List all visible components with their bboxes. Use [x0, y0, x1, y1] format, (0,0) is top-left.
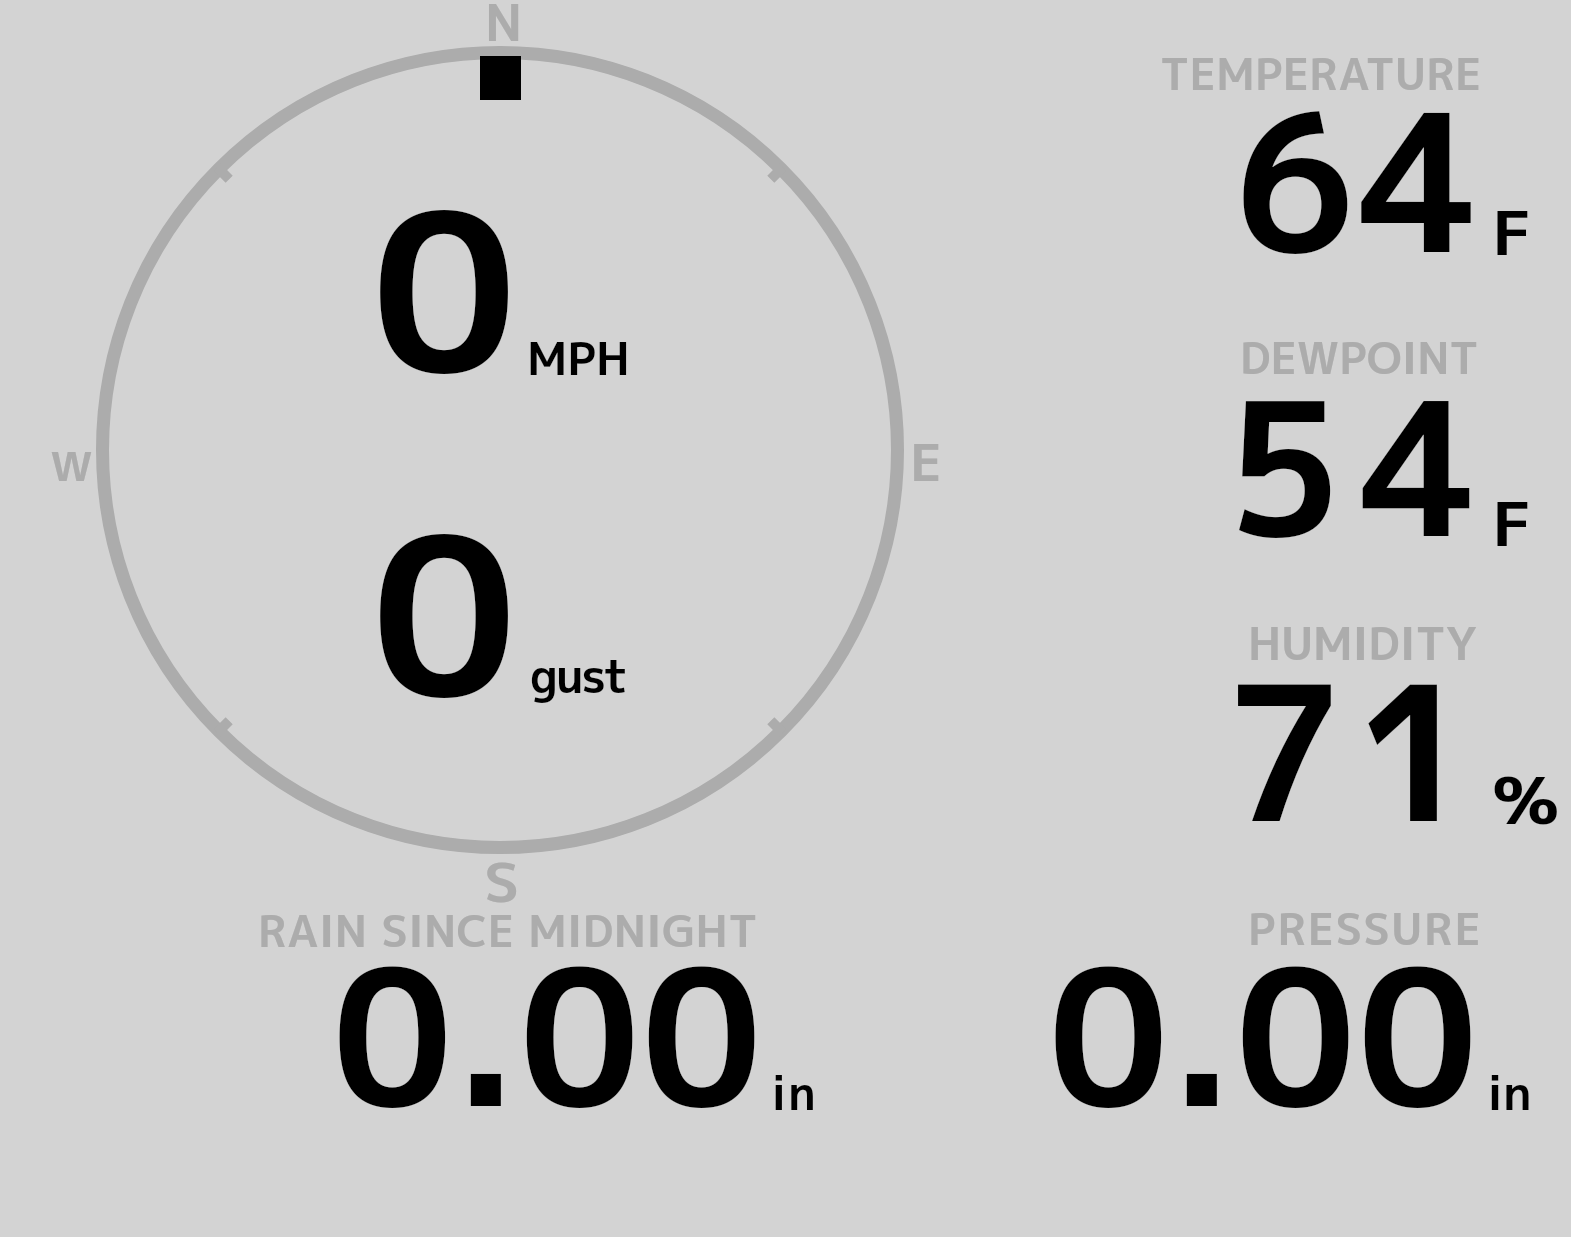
- staticText: gust: [530, 643, 627, 708]
- staticText: N: [485, 0, 523, 57]
- staticText: F: [1492, 481, 1532, 565]
- staticText: S: [484, 846, 520, 918]
- button[interactable]: Dewpoint 54 F: [1110, 310, 1565, 570]
- staticText: 0.00: [332, 903, 764, 1166]
- staticText: TEMPERATURE: [1160, 43, 1482, 104]
- button[interactable]: Rain since midnight 0.00 in: [210, 885, 830, 1135]
- staticText: DEWPOINT: [1240, 327, 1479, 388]
- staticText: 71: [1224, 620, 1488, 881]
- staticText: MPH: [527, 326, 630, 390]
- button[interactable]: Temperature 64 F: [1110, 30, 1565, 300]
- button[interactable]: Pressure 0.00 in: [1000, 885, 1565, 1135]
- staticText: F: [1492, 190, 1532, 274]
- staticText: 0.00: [1048, 903, 1480, 1166]
- staticText: PRESSURE: [1248, 898, 1483, 959]
- staticText: RAIN SINCE MIDNIGHT: [258, 900, 758, 961]
- staticText: HUMIDITY: [1248, 612, 1478, 675]
- staticText: in: [771, 1060, 818, 1125]
- staticText: 0: [371, 136, 518, 442]
- staticText: 54: [1225, 337, 1496, 595]
- staticText: 64: [1234, 48, 1484, 313]
- staticText: W: [50, 439, 94, 494]
- staticText: in: [1487, 1059, 1532, 1126]
- button[interactable]: Humidity 71 percent: [1110, 595, 1565, 855]
- staticText: E: [910, 427, 942, 497]
- staticText: 0: [371, 460, 518, 766]
- button[interactable]: Wind speed 0 MPH, gust 0, direction nort…: [90, 40, 910, 860]
- staticText: %: [1492, 755, 1560, 845]
